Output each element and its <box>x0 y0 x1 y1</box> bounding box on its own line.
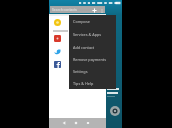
staticText: Add contact <box>73 45 95 50</box>
button[interactable] <box>49 48 106 55</box>
button[interactable]: Search contacts <box>50 6 105 13</box>
button[interactable]: Compose <box>69 15 116 28</box>
button[interactable]: Back <box>59 118 69 128</box>
button[interactable]: Add contact <box>69 41 116 53</box>
staticText: Settings <box>73 69 88 74</box>
button[interactable]: Settings <box>69 65 116 77</box>
button[interactable]: Tips & Help <box>69 77 116 89</box>
staticText: Remove payments <box>73 57 106 62</box>
button[interactable]: Home <box>71 118 81 128</box>
button[interactable]: More options <box>98 7 105 14</box>
staticText: Services & Apps <box>73 32 102 37</box>
button[interactable]: Settings <box>110 106 120 116</box>
button[interactable] <box>49 19 106 26</box>
button[interactable]: Remove payments <box>69 53 116 65</box>
button[interactable] <box>49 61 106 68</box>
staticText: Compose <box>73 19 90 24</box>
button[interactable]: Add contact <box>91 7 98 14</box>
staticText: Search contacts <box>52 7 77 12</box>
button[interactable] <box>49 35 106 42</box>
button[interactable]: Recents <box>83 118 93 128</box>
staticText: Tips & Help <box>73 81 94 86</box>
button[interactable]: Services & Apps <box>69 28 116 41</box>
